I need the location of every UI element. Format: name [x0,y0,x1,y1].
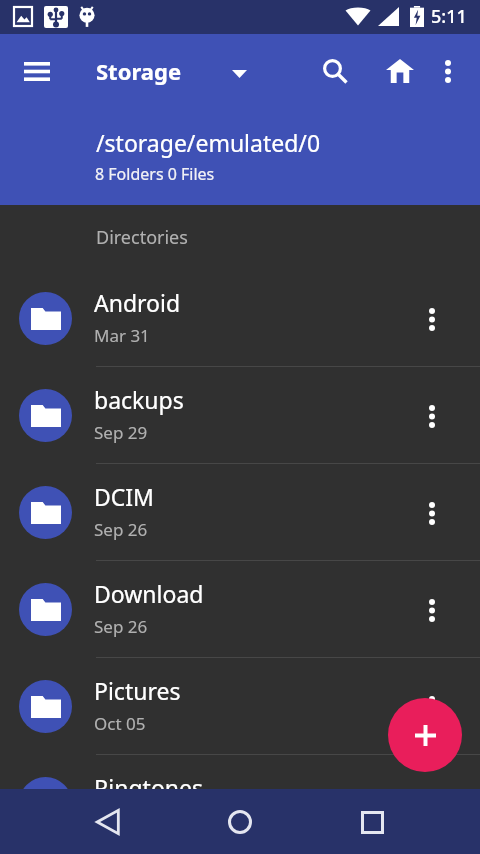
staticText: Android [94,287,181,318]
button[interactable]: More options [426,49,470,93]
button[interactable]: Search [313,49,357,93]
button[interactable]: Ringtones [0,755,480,789]
staticText: Sep 26 [94,615,148,638]
button[interactable]: Item options [408,683,456,731]
staticText: 5:11 [431,4,467,29]
button[interactable]: Pictures [0,658,480,755]
staticText: Download [94,578,204,609]
button[interactable]: Change storage [221,56,257,92]
staticText: Pictures [94,675,181,706]
button[interactable]: Item options [408,392,456,440]
staticText: Storage [96,56,182,86]
staticText: DCIM [94,481,154,512]
button[interactable]: Item options [408,295,456,343]
staticText: Sep 29 [94,421,148,444]
button[interactable]: Home [216,798,264,846]
staticText: /storage/emulated/0 [96,127,321,158]
staticText: Directories [96,225,188,250]
button[interactable]: Recents [348,798,396,846]
staticText: 8 Folders 0 Files [95,163,215,185]
button[interactable]: Navigation drawer [13,47,61,95]
button[interactable]: Download [0,561,480,658]
staticText: Mar 31 [94,324,150,347]
button[interactable]: Item options [408,489,456,537]
staticText: backups [94,384,184,415]
button[interactable]: Home [378,49,422,93]
button[interactable]: Android [0,270,480,367]
button[interactable]: Back [84,798,132,846]
button[interactable]: backups [0,367,480,464]
button[interactable]: DCIM [0,464,480,561]
button[interactable]: Storage [90,48,240,94]
staticText: Oct 05 [94,712,146,735]
staticText: Ringtones [94,772,204,789]
staticText: Sep 26 [94,518,148,541]
button[interactable]: Item options [408,586,456,634]
button[interactable]: Add [388,698,462,772]
